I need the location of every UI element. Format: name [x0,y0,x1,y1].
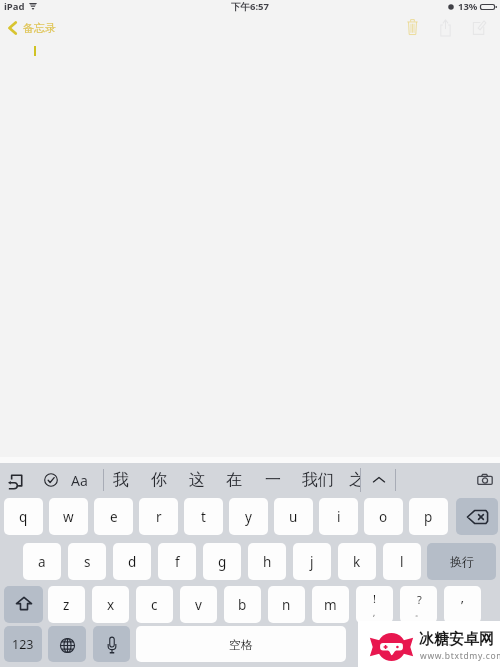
staticText: s [84,553,91,571]
button[interactable]: x [92,586,129,623]
staticText: ! [373,591,376,606]
staticText: 我 [113,470,129,490]
button[interactable]: m [312,586,349,623]
button[interactable]: q [4,498,43,535]
button[interactable]: 在 [222,467,246,493]
button[interactable]: o [364,498,403,535]
staticText: p [424,508,433,526]
staticText: ’ [461,596,464,614]
button[interactable]: s [68,543,106,580]
button[interactable]: y [229,498,268,535]
button[interactable]: 我们 [300,467,336,493]
button[interactable]: Collapse [371,472,387,488]
staticText: 123 [12,636,34,653]
button[interactable]: ? [400,586,437,623]
button[interactable]: 123 [4,626,42,662]
button[interactable]: 换行 [427,543,496,580]
button[interactable]: Shift [4,586,43,623]
button[interactable]: Confirm [44,473,58,487]
button[interactable]: t [184,498,223,535]
button[interactable]: Backspace [456,498,498,535]
staticText: iPad [4,0,25,13]
staticText: 13% [458,0,478,13]
staticText: t [201,508,206,526]
staticText: 一 [265,470,281,490]
staticText: f [175,553,180,571]
button[interactable]: w [49,498,88,535]
button[interactable]: d [113,543,151,580]
staticText: l [400,553,404,571]
staticText: u [289,508,298,526]
staticText: e [110,508,118,526]
button[interactable]: r [139,498,178,535]
button[interactable]: l [383,543,421,580]
button[interactable]: p [409,498,448,535]
staticText: n [282,596,291,614]
staticText: b [238,596,247,614]
button[interactable]: z [48,586,85,623]
button[interactable]: 这 [185,467,209,493]
button[interactable]: Camera [477,472,493,488]
button[interactable]: Switch keyboard [48,626,86,662]
button[interactable]: 我 [109,467,133,493]
staticText: 冰糖安卓网 [419,630,494,649]
staticText: z [63,596,70,614]
staticText: 下午6:57 [231,0,269,13]
button[interactable]: ’ [444,586,481,623]
staticText: w [63,508,74,526]
button[interactable]: Delete [400,15,424,40]
button[interactable]: i [319,498,358,535]
staticText: ? [417,592,422,607]
button[interactable]: Undo [8,475,22,489]
staticText: m [324,596,337,614]
staticText: j [310,553,314,571]
staticText: 在 [226,470,242,490]
staticText: , [373,607,376,618]
staticText: 空格 [229,637,253,652]
button[interactable]: j [293,543,331,580]
button[interactable]: 空格 [136,626,346,662]
staticText: d [128,553,137,571]
staticText: g [218,553,227,571]
staticText: r [156,508,162,526]
staticText: 我们 [302,470,334,490]
button[interactable]: h [248,543,286,580]
button[interactable]: c [136,586,173,623]
staticText: v [195,596,202,614]
button[interactable]: New note [467,15,491,40]
button[interactable]: Dictation [93,626,130,662]
button[interactable]: v [180,586,217,623]
button[interactable]: a [23,543,61,580]
staticText: y [245,508,252,526]
staticText: h [263,553,272,571]
staticText: 之 [349,470,360,490]
button[interactable]: ! [356,586,393,623]
staticText: 这 [189,470,205,490]
staticText: k [353,553,361,571]
button[interactable]: 你 [147,467,171,493]
button[interactable]: 一 [261,467,285,493]
button[interactable]: b [224,586,261,623]
staticText: q [19,508,28,526]
staticText: 备忘录 [23,21,56,35]
staticText: 你 [151,470,167,490]
button[interactable]: 之 [349,468,360,492]
button[interactable]: 备忘录 [8,21,56,35]
button[interactable]: u [274,498,313,535]
button[interactable]: f [158,543,196,580]
button[interactable]: e [94,498,133,535]
staticText: www.btxtdmy.com [420,650,500,662]
button[interactable]: k [338,543,376,580]
staticText: a [38,553,46,571]
button[interactable]: g [203,543,241,580]
staticText: i [337,508,341,526]
button[interactable]: n [268,586,305,623]
staticText: 。 [415,608,423,618]
button[interactable]: Aa [71,471,88,490]
staticText: o [379,508,388,526]
staticText: c [151,596,158,614]
staticText: x [107,596,115,614]
staticText: 换行 [450,554,474,569]
